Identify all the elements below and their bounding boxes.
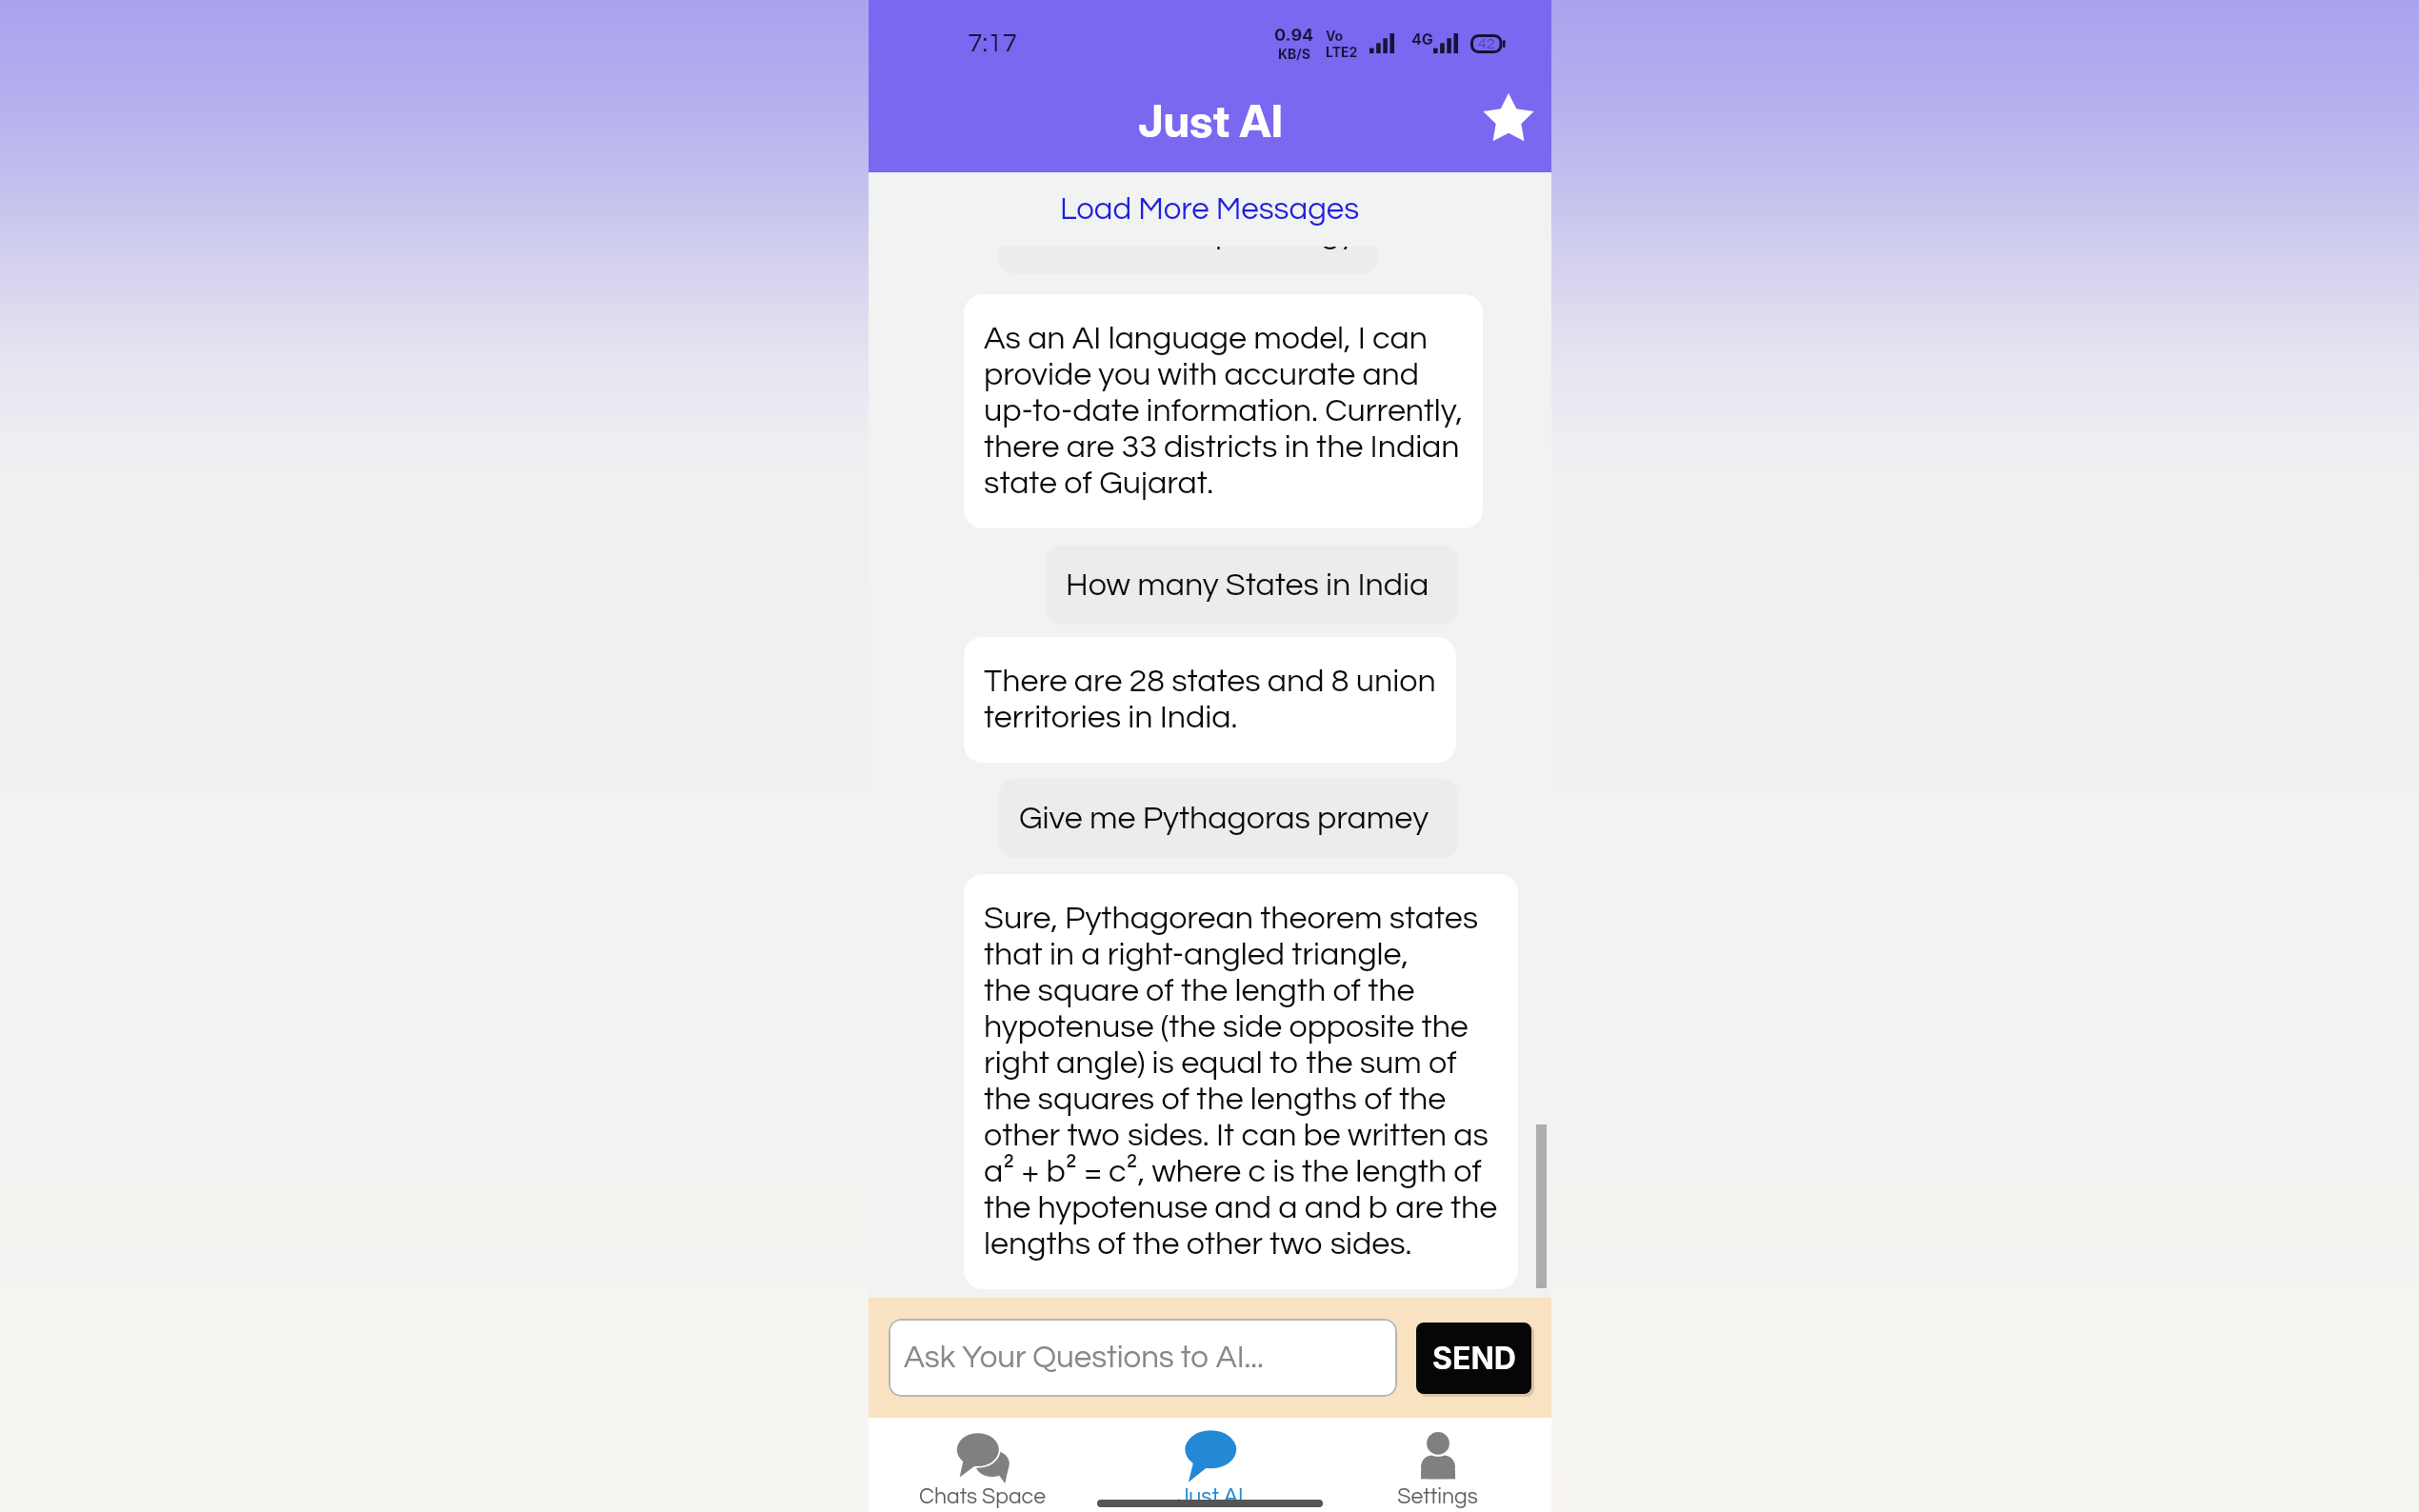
staticText: 4G [1411, 30, 1433, 48]
button[interactable]: Ask Your Questions to AI... [889, 1319, 1397, 1397]
button[interactable]: There are 28 states and 8 union territor… [964, 637, 1456, 763]
staticText: LTE2 [1326, 44, 1358, 60]
button[interactable]: As an AI language model, I can provide y… [964, 294, 1483, 528]
button[interactable]: Sure, Pythagorean theorem states that in… [964, 874, 1518, 1289]
button[interactable]: How many States in India [1046, 546, 1458, 625]
button[interactable]: Just AI [1096, 1418, 1324, 1512]
staticText: SEND [1432, 1340, 1516, 1377]
staticText: Ask Your Questions to AI... [904, 1342, 1264, 1374]
staticText: Sure, Pythagorean theorem states that in… [984, 902, 1498, 1261]
staticText: Just AI [1177, 1485, 1244, 1508]
button[interactable]: Give me Pythagoras pramey [999, 779, 1458, 858]
staticText: Give me Pythagoras pramey [1019, 802, 1429, 835]
staticText: Tell about, Gujarat in gy [1021, 216, 1356, 249]
staticText: How many States in India [1066, 568, 1429, 602]
staticText: 42 [1478, 36, 1495, 51]
button[interactable]: Load More Messages [869, 172, 1551, 247]
staticText: 7:17 [968, 30, 1017, 57]
button[interactable]: Favorite [1477, 87, 1540, 149]
staticText: KB/S [1278, 46, 1310, 62]
staticText: 0.94 [1274, 25, 1314, 46]
staticText: Load More Messages [1060, 193, 1360, 226]
button[interactable]: SEND [1416, 1323, 1531, 1394]
button[interactable]: Settings [1324, 1418, 1551, 1512]
staticText: Chats Space [919, 1485, 1046, 1508]
staticText: As an AI language model, I can provide y… [984, 322, 1463, 500]
staticText: Just AI [1138, 93, 1283, 148]
button[interactable]: Chats Space [869, 1418, 1096, 1512]
staticText: There are 28 states and 8 union territor… [984, 665, 1436, 734]
staticText: Vo [1326, 28, 1344, 44]
staticText: Settings [1397, 1485, 1478, 1508]
